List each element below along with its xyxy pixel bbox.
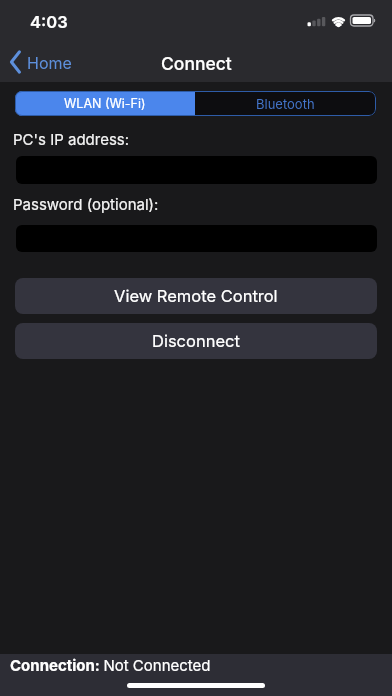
staticText: Bluetooth <box>256 96 315 112</box>
staticText: 4:03 <box>30 12 68 32</box>
button[interactable]: Bluetooth <box>195 91 376 116</box>
staticText: Connection: Not Connected <box>10 656 211 674</box>
staticText: Connect <box>161 53 232 74</box>
button[interactable]: WLAN (Wi-Fi) <box>15 91 195 116</box>
button[interactable]: View Remote Control <box>15 278 377 314</box>
staticText: WLAN (Wi-Fi) <box>64 96 146 111</box>
staticText: PC's IP address: <box>13 130 130 148</box>
staticText: Disconnect <box>152 331 240 351</box>
button[interactable]: Disconnect <box>15 323 377 359</box>
staticText: Password (optional): <box>13 195 159 213</box>
staticText: Home <box>27 53 72 72</box>
button[interactable]: Home <box>8 48 72 76</box>
staticText: View Remote Control <box>114 286 278 306</box>
